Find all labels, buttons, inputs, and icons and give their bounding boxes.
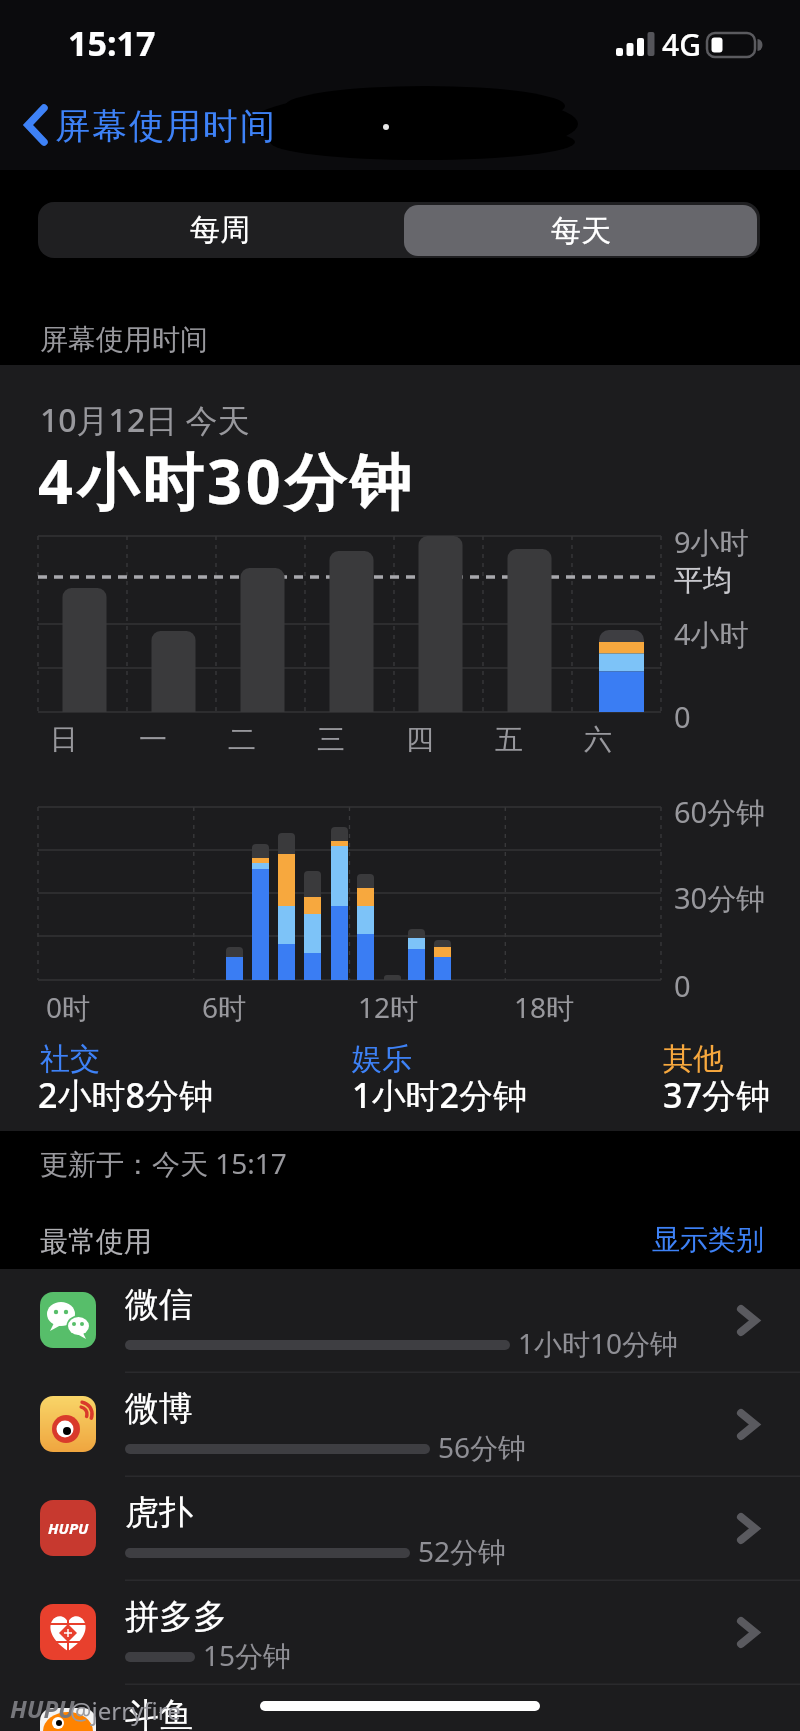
staticText: 每天 xyxy=(551,212,611,250)
staticText: 0 xyxy=(674,966,691,1005)
staticText: 五 xyxy=(495,722,523,754)
staticText: HUPU xyxy=(48,1518,89,1538)
staticText: 4小时 xyxy=(674,614,749,654)
staticText: 18时 xyxy=(514,988,575,1026)
staticText: 1小时2分钟 xyxy=(352,1072,527,1118)
staticText: 娱乐 xyxy=(352,1040,412,1078)
staticText: 15:17 xyxy=(68,20,156,66)
staticText: 12时 xyxy=(358,988,419,1026)
staticText: 日 xyxy=(50,722,78,754)
staticText: 37分钟 xyxy=(663,1072,770,1118)
button[interactable]: HUPU xyxy=(0,1477,800,1581)
staticText: 1小时10分钟 xyxy=(518,1324,679,1362)
staticText: 52分钟 xyxy=(418,1532,507,1570)
staticText: 每周 xyxy=(190,211,250,249)
staticText: 四 xyxy=(406,722,434,754)
staticText: 30分钟 xyxy=(674,878,766,918)
staticText: 斗鱼 xyxy=(125,1694,193,1731)
staticText: 0时 xyxy=(46,988,91,1026)
staticText: 10月12日 今天 xyxy=(40,398,250,442)
staticText: HUPU xyxy=(10,1692,75,1725)
staticText: 虎扑 xyxy=(125,1491,193,1534)
staticText: 0 xyxy=(674,697,691,736)
staticText: 56分钟 xyxy=(438,1428,527,1466)
staticText: 社交 xyxy=(40,1040,100,1078)
staticText: 6时 xyxy=(202,988,247,1026)
staticText: 9小时 xyxy=(674,522,749,562)
staticText: 4小时30分钟 xyxy=(38,439,415,522)
button[interactable] xyxy=(0,1685,800,1731)
staticText: 六 xyxy=(584,722,612,754)
button[interactable]: 每天 xyxy=(404,205,757,256)
button[interactable]: 拼多多 xyxy=(0,1581,800,1685)
button[interactable] xyxy=(640,1214,780,1262)
staticText: 平均 xyxy=(674,562,732,599)
staticText: 更新于：今天 15:17 xyxy=(40,1144,287,1182)
staticText: 4G xyxy=(662,24,701,65)
staticText: 二 xyxy=(228,722,256,754)
button[interactable]: 微信 xyxy=(0,1269,800,1373)
staticText: 显示类别 xyxy=(652,1222,764,1257)
staticText: 最常使用 xyxy=(40,1224,152,1259)
button[interactable]: 微博 xyxy=(0,1373,800,1477)
staticText: 2小时8分钟 xyxy=(38,1072,213,1118)
staticText: 一 xyxy=(139,722,167,754)
staticText: 拼多多 xyxy=(125,1595,227,1638)
staticText: 60分钟 xyxy=(674,792,766,832)
button[interactable]: 每周 xyxy=(40,204,400,256)
staticText: 其他 xyxy=(663,1040,723,1078)
staticText: 三 xyxy=(317,722,345,754)
staticText: 屏幕使用时间 xyxy=(40,322,208,357)
staticText: 屏幕使用时间 xyxy=(54,104,276,148)
button[interactable] xyxy=(24,100,254,158)
staticText: 微信 xyxy=(125,1283,193,1326)
staticText: @jerryfire xyxy=(70,1694,181,1727)
staticText: 15分钟 xyxy=(203,1636,292,1674)
staticText: 微博 xyxy=(125,1387,193,1430)
